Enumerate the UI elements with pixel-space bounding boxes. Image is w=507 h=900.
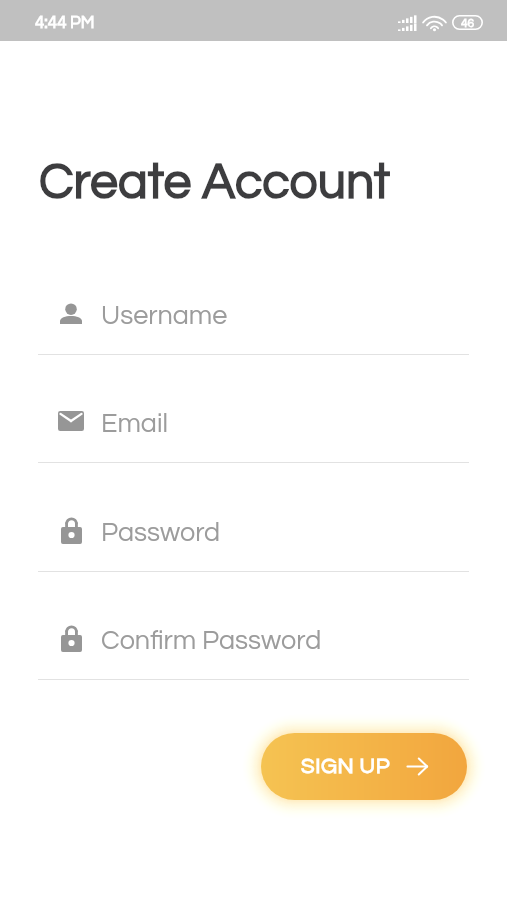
button[interactable]: Email <box>38 384 469 463</box>
button[interactable]: Username <box>38 276 469 355</box>
button[interactable]: SIGN UP <box>261 733 467 800</box>
staticText: Email <box>101 410 168 438</box>
staticText: Confirm Password <box>101 627 322 655</box>
staticText: SIGN UP <box>301 755 391 778</box>
staticText: Password <box>101 519 221 547</box>
staticText: 4:44 PM <box>35 14 95 32</box>
button[interactable]: Confirm Password <box>38 601 469 680</box>
button[interactable]: Password <box>38 493 469 572</box>
staticText: Username <box>101 302 228 330</box>
other: Continue <box>407 757 428 776</box>
staticText: 46 <box>461 17 475 29</box>
staticText: Create Account <box>39 157 390 209</box>
